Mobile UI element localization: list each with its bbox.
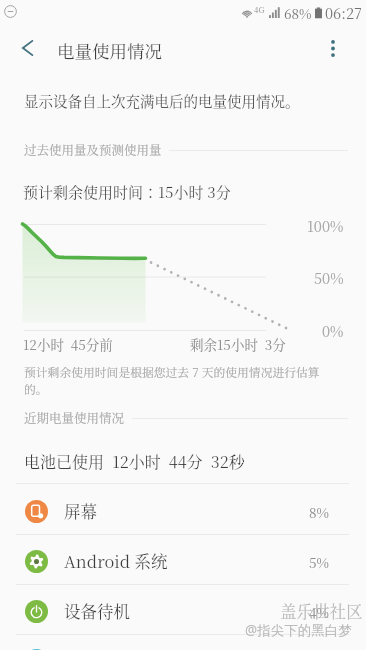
staticText: 06:27 <box>325 2 362 23</box>
staticText: 0% <box>322 320 344 341</box>
staticText: 电池已使用 12小时 44分 32秒 <box>24 450 245 473</box>
button[interactable]: 屏幕 <box>0 486 366 536</box>
staticText: Android 系统 <box>64 549 168 573</box>
button[interactable]: 设备待机 <box>0 586 366 636</box>
staticText: 电量使用情况 <box>57 38 162 63</box>
staticText: 5% <box>309 552 329 571</box>
button[interactable]: More options <box>311 26 355 70</box>
staticText: 剩余15小时 3分 <box>190 334 286 353</box>
staticText: 68% <box>284 3 312 22</box>
staticText: 4% <box>309 602 329 621</box>
button[interactable]: Android 系统 <box>0 536 366 586</box>
staticText: @指尖下的黑白梦 <box>245 621 352 639</box>
staticText: 预计剩余使用时间：15小时 3分 <box>23 181 231 203</box>
staticText: 近期电量使用情况 <box>24 409 125 427</box>
staticText: 屏幕 <box>64 499 97 523</box>
button[interactable]: Back <box>5 26 49 70</box>
staticText: 12小时 45分前 <box>23 334 113 353</box>
staticText: 100% <box>307 215 344 236</box>
staticText: 预计剩余使用时间是根据您过去 7 天的使用情况进行估算的。 <box>24 363 326 397</box>
staticText: 8% <box>309 502 329 521</box>
staticText: 4G <box>254 4 265 15</box>
staticText: 显示设备自上次充满电后的电量使用情况。 <box>24 90 300 111</box>
staticText: 50% <box>314 267 344 288</box>
staticText: 设备待机 <box>64 599 130 623</box>
staticText: 盖乐世社区 <box>280 599 363 623</box>
staticText: 过去使用量及预测使用量 <box>24 141 162 159</box>
